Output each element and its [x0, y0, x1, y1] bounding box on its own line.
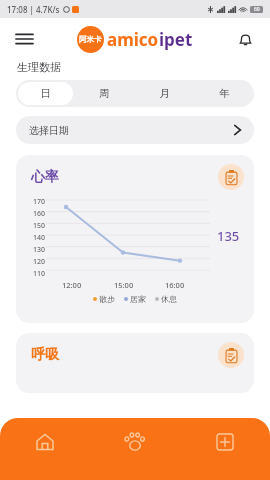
staticText: 休息 [161, 294, 177, 304]
button[interactable]: Records [180, 418, 270, 466]
staticText: amico [107, 28, 159, 51]
button[interactable]: Report [218, 342, 244, 368]
staticText: 生理数据 [17, 60, 61, 74]
staticText: 年 [219, 87, 230, 100]
button[interactable]: Pet [90, 418, 180, 466]
button[interactable]: 年 [196, 82, 252, 105]
staticText: 12:00 [62, 280, 82, 290]
staticText: ipet [159, 28, 193, 51]
staticText: 月 [159, 87, 170, 100]
button[interactable]: Home [0, 418, 90, 466]
staticText: 呼吸 [31, 346, 59, 364]
staticText: 150 [33, 221, 46, 231]
button[interactable]: Menu [10, 25, 38, 53]
button[interactable]: 心率 [16, 155, 254, 323]
button[interactable]: 月 [136, 82, 192, 105]
button[interactable]: 选择日期 [16, 116, 254, 144]
button[interactable]: 呼吸 [16, 333, 254, 393]
staticText: 心率 [31, 168, 59, 186]
button[interactable]: Notifications [232, 26, 258, 52]
button[interactable]: Report [218, 164, 244, 190]
staticText: 17:08 | 4.7K/s [7, 4, 60, 15]
staticText: 阿米卡 [79, 35, 102, 44]
staticText: 居家 [130, 294, 146, 304]
staticText: 周 [99, 87, 110, 100]
staticText: 16:00 [165, 280, 185, 290]
staticText: 120 [33, 257, 46, 267]
staticText: 135 [217, 227, 240, 245]
staticText: 130 [33, 245, 46, 255]
staticText: 110 [33, 269, 46, 279]
staticText: 140 [33, 233, 46, 243]
staticText: 散步 [99, 294, 115, 304]
staticText: 日 [40, 87, 51, 100]
staticText: 选择日期 [29, 124, 69, 137]
button[interactable]: 周 [77, 82, 132, 105]
staticText: 60 [254, 6, 260, 13]
staticText: 160 [33, 209, 46, 219]
staticText: 15:00 [114, 280, 134, 290]
staticText: 170 [33, 197, 46, 207]
button[interactable]: 日 [18, 82, 73, 105]
